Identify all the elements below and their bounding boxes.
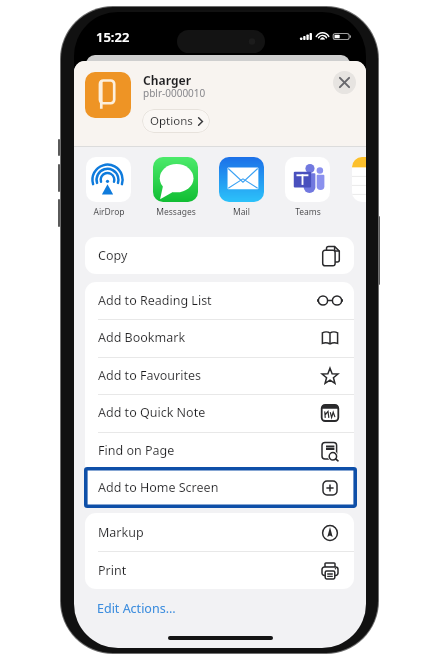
button[interactable]: Options — [142, 109, 210, 133]
button[interactable]: Mail — [219, 157, 264, 218]
staticText: Print — [98, 562, 127, 579]
staticText: 15:22 — [96, 28, 130, 46]
button[interactable]: Find on Page — [85, 432, 354, 469]
button[interactable]: Copy — [85, 237, 354, 274]
staticText: Add to Reading List — [98, 292, 212, 309]
staticText: Add Bookmark — [98, 329, 186, 346]
staticText: Options — [150, 113, 193, 129]
staticText: pblr-0000010 — [143, 86, 206, 100]
staticText: AirDrop — [93, 206, 125, 218]
button[interactable]: Edit Actions… — [97, 600, 176, 617]
button[interactable]: Add to Favourites — [85, 357, 354, 394]
button[interactable]: Add to Reading List — [85, 282, 354, 319]
button[interactable]: Add to Quick Note — [85, 394, 354, 431]
button[interactable]: Print — [85, 551, 354, 589]
button[interactable]: Markup — [85, 513, 354, 551]
staticText: Add to Home Screen — [98, 479, 219, 496]
staticText: Markup — [98, 524, 144, 541]
staticText: Add to Favourites — [98, 367, 202, 384]
button[interactable]: Add to Home Screen — [85, 469, 354, 506]
staticText: Edit Actions… — [97, 600, 176, 617]
staticText: Find on Page — [98, 442, 175, 459]
staticText: Add to Quick Note — [98, 404, 206, 421]
staticText: Teams — [295, 206, 321, 218]
staticText: Mail — [233, 206, 250, 218]
button[interactable]: AirDrop — [86, 157, 131, 218]
button[interactable]: Teams — [285, 157, 330, 218]
button[interactable]: Add Bookmark — [85, 319, 354, 356]
staticText: Copy — [98, 247, 128, 264]
button[interactable]: Messages — [153, 157, 198, 218]
button[interactable]: Close — [333, 71, 356, 94]
staticText: Messages — [156, 206, 196, 218]
staticText: Charger — [143, 72, 192, 88]
